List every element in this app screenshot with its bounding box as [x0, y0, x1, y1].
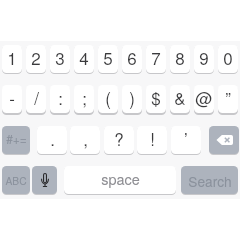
staticText: . — [50, 126, 55, 150]
staticText: ! — [150, 126, 155, 150]
button[interactable]: Search — [181, 166, 238, 194]
staticText: Search — [188, 171, 232, 191]
button[interactable]: 0 — [218, 45, 238, 73]
button[interactable]: $ — [146, 85, 166, 113]
button[interactable]: ? — [104, 126, 134, 154]
staticText: 1 — [7, 45, 17, 69]
button[interactable]: & — [170, 85, 190, 113]
button[interactable]: 7 — [146, 45, 166, 73]
staticText: ( — [105, 85, 111, 109]
staticText: 7 — [151, 45, 161, 69]
button[interactable]: ” — [218, 85, 238, 113]
button[interactable]: - — [2, 85, 22, 113]
staticText: / — [34, 85, 39, 109]
button[interactable]: 2 — [26, 45, 46, 73]
button[interactable]: ABC — [2, 166, 30, 194]
staticText: space — [101, 168, 140, 189]
button[interactable]: . — [37, 126, 67, 154]
staticText: 6 — [127, 45, 137, 69]
button[interactable]: 6 — [122, 45, 142, 73]
button[interactable]: 9 — [194, 45, 214, 73]
staticText: ” — [225, 85, 231, 109]
staticText: 8 — [175, 45, 185, 69]
staticText: - — [9, 85, 15, 109]
button[interactable]: space — [64, 166, 176, 194]
staticText: 4 — [79, 45, 89, 69]
button[interactable]: 5 — [98, 45, 118, 73]
staticText: 9 — [199, 45, 209, 69]
button[interactable]: 4 — [74, 45, 94, 73]
staticText: 5 — [103, 45, 113, 69]
button[interactable]: 3 — [50, 45, 70, 73]
staticText: & — [174, 85, 186, 109]
button[interactable]: Backspace — [209, 126, 239, 154]
staticText: ; — [82, 85, 87, 109]
staticText: , — [83, 126, 88, 150]
staticText: @ — [195, 85, 213, 109]
button[interactable]: 1 — [2, 45, 22, 73]
staticText: ’ — [184, 126, 188, 150]
staticText: #+= — [6, 130, 27, 147]
button[interactable]: ) — [122, 85, 142, 113]
button[interactable]: ( — [98, 85, 118, 113]
button[interactable]: , — [70, 126, 100, 154]
button[interactable]: ’ — [171, 126, 201, 154]
button[interactable]: ! — [137, 126, 167, 154]
button[interactable]: ; — [74, 85, 94, 113]
button[interactable]: / — [26, 85, 46, 113]
staticText: ? — [114, 126, 124, 150]
staticText: 3 — [55, 45, 65, 69]
button[interactable]: #+= — [2, 126, 30, 154]
staticText: $ — [151, 85, 161, 109]
staticText: : — [58, 85, 63, 109]
button[interactable]: 8 — [170, 45, 190, 73]
staticText: 0 — [223, 45, 233, 69]
staticText: ABC — [5, 173, 27, 188]
button[interactable]: Voice input — [32, 166, 57, 194]
staticText: 2 — [31, 45, 41, 69]
button[interactable]: @ — [194, 85, 214, 113]
staticText: ) — [129, 85, 135, 109]
button[interactable]: : — [50, 85, 70, 113]
